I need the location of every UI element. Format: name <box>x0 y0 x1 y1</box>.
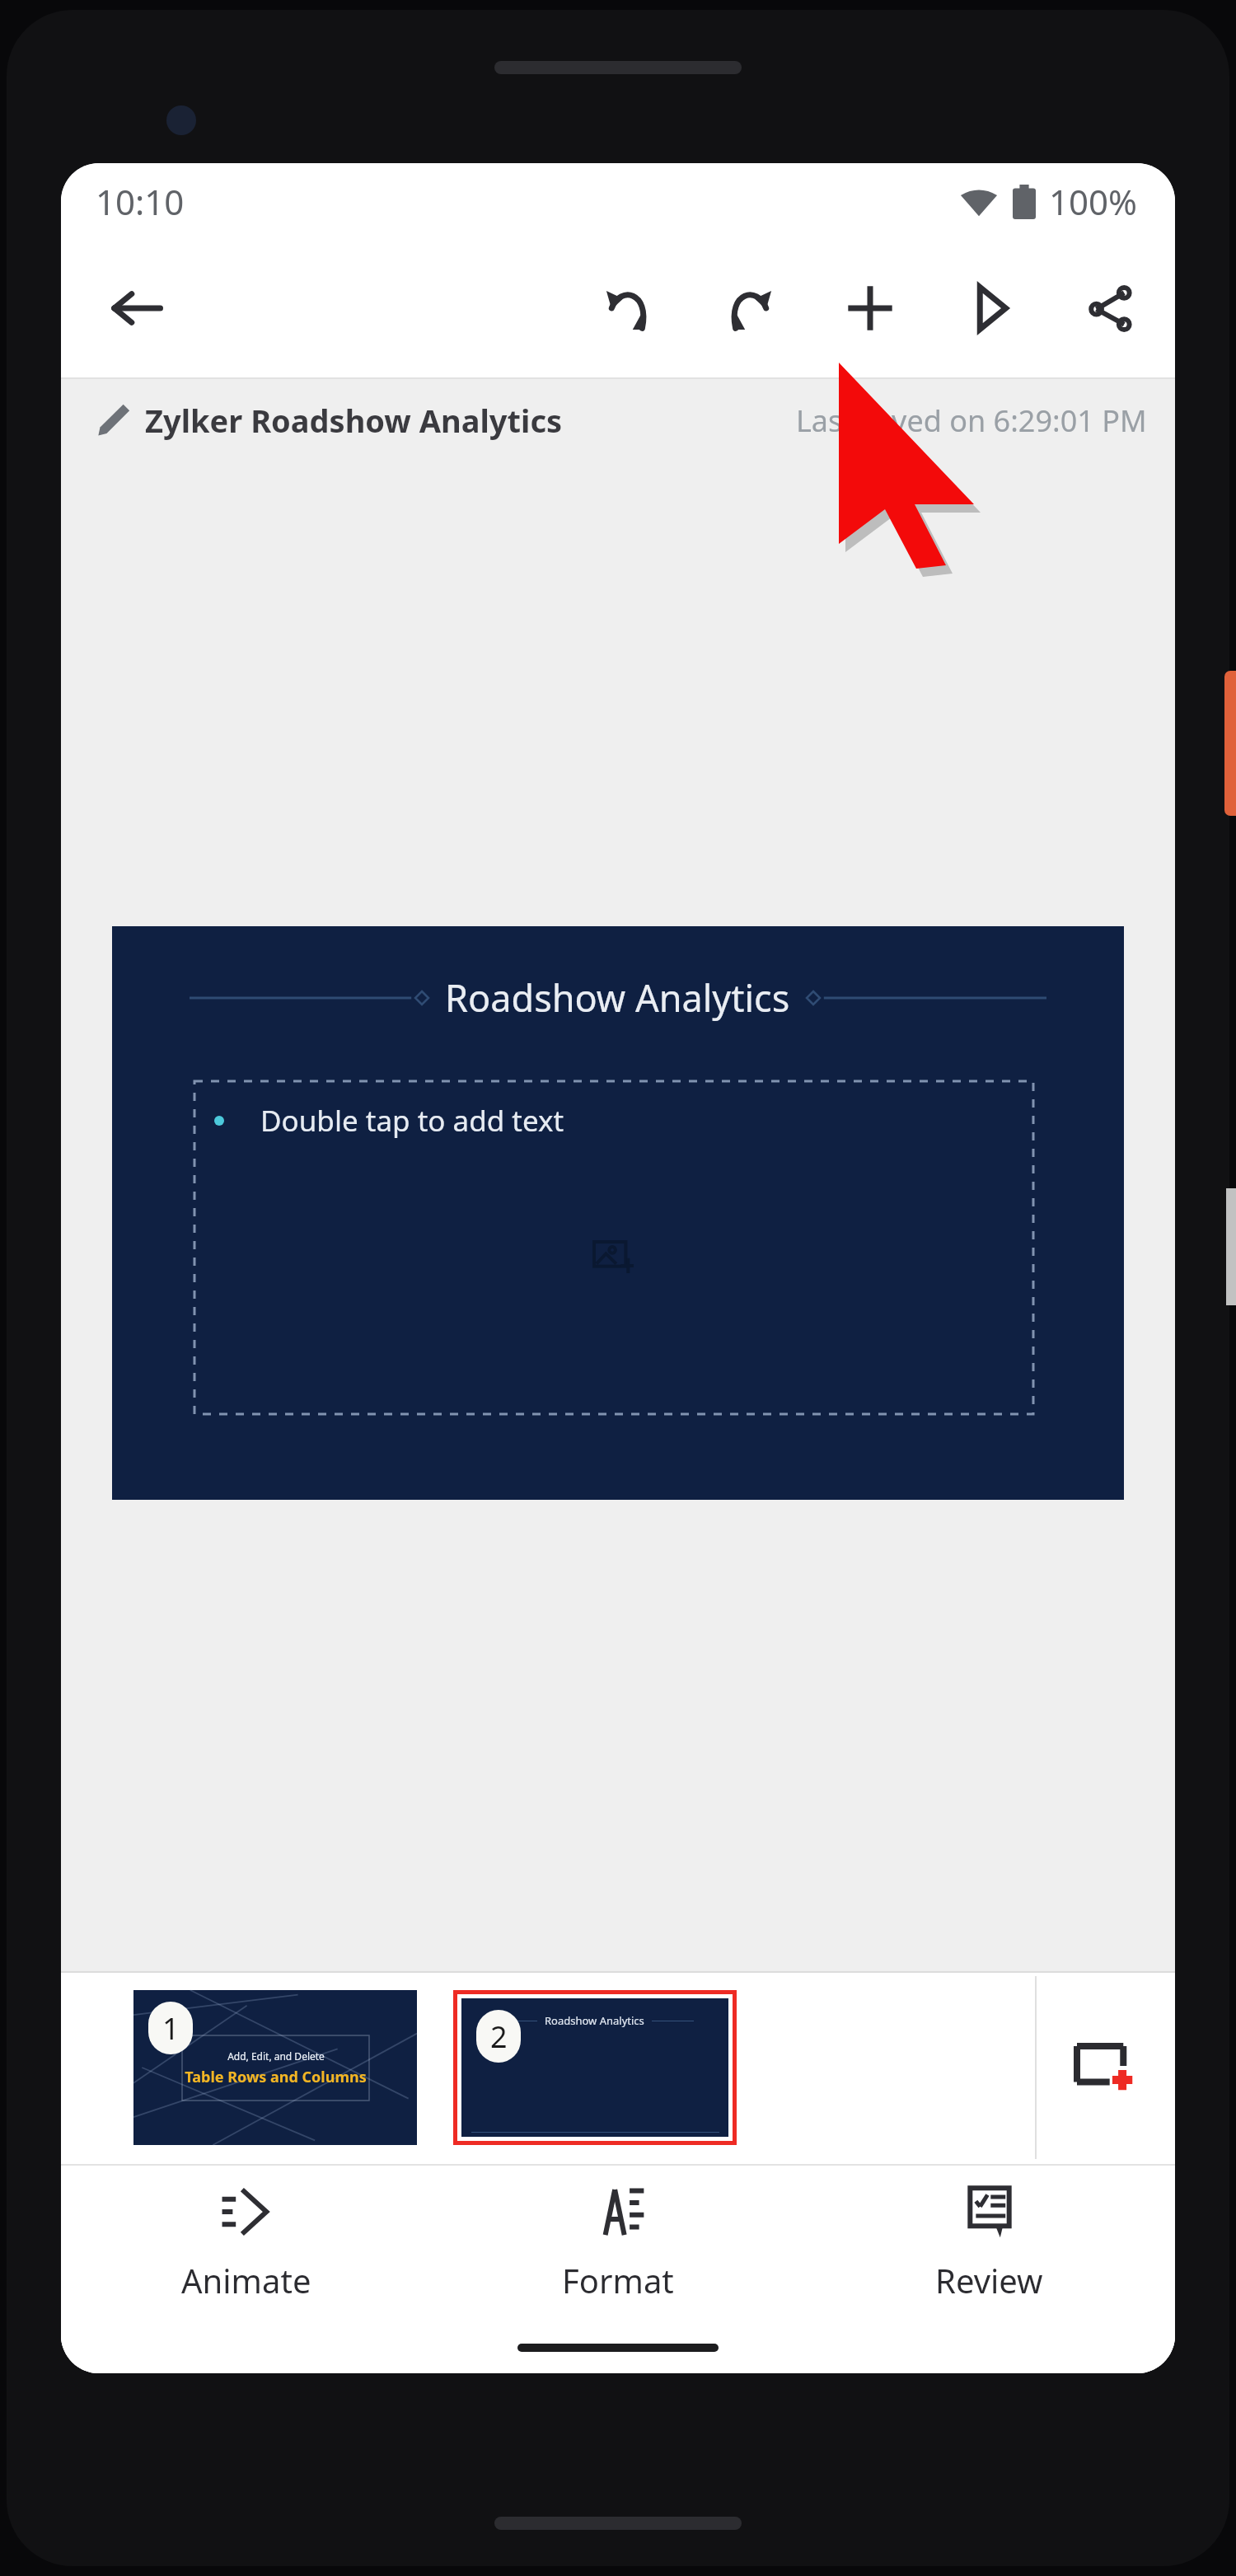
button[interactable]: Add, Edit, and Delete <box>133 1990 417 2145</box>
staticText: Animate <box>181 2258 311 2302</box>
staticText: 100% <box>1049 178 1137 225</box>
staticText: 2 <box>490 2016 508 2057</box>
button[interactable]: Add slide <box>1037 1971 1175 2164</box>
button[interactable]: Add <box>829 267 911 349</box>
staticText: 10:10 <box>96 178 185 225</box>
staticText: Add, Edit, and Delete <box>227 2049 325 2063</box>
button[interactable]: Present <box>949 267 1032 349</box>
button[interactable]: Share <box>1070 267 1152 349</box>
staticText: Roadshow Analytics <box>445 972 790 1023</box>
staticText: Table Rows and Columns <box>185 2067 367 2087</box>
button[interactable]: Roadshow Analytics <box>112 926 1124 1500</box>
button[interactable]: Review <box>803 2166 1175 2322</box>
staticText: 1 <box>162 2008 180 2049</box>
button[interactable]: Format <box>432 2166 803 2322</box>
staticText: Format <box>562 2258 674 2302</box>
button[interactable]: Roadshow Analytics <box>461 1998 728 2137</box>
staticText: Roadshow Analytics <box>545 2013 644 2028</box>
button[interactable]: Double tap to add text <box>194 1081 1033 1414</box>
button[interactable]: Animate <box>61 2166 432 2322</box>
staticText: Zylker Roadshow Analytics <box>145 399 563 442</box>
staticText: Last saved on 6:29:01 PM <box>796 400 1147 441</box>
button[interactable]: Undo <box>587 267 669 349</box>
button[interactable]: Back <box>96 267 178 349</box>
staticText: Review <box>935 2258 1043 2302</box>
button[interactable]: Zylker Roadshow Analytics <box>61 379 1175 461</box>
staticText: Double tap to add text <box>260 1101 564 1140</box>
button[interactable]: Redo <box>709 267 791 349</box>
